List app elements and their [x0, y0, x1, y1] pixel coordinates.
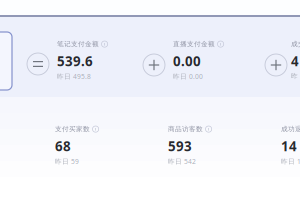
staticText: 昨日 1 [281, 157, 300, 166]
staticText: 68 [55, 137, 71, 155]
staticText: 593 [168, 137, 192, 155]
staticText: 14 [281, 137, 297, 155]
staticText: 昨日 0.00 [173, 72, 203, 81]
staticText: 4 [291, 52, 299, 70]
staticText: 成功退款 [281, 125, 300, 133]
button[interactable]: Add [265, 54, 287, 76]
staticText: 成交 [291, 40, 300, 48]
staticText: 笔记支付金额 [57, 40, 99, 48]
staticText: 商品访客数 [168, 125, 203, 133]
button[interactable]: Add [143, 54, 165, 76]
staticText: 539.6 [57, 52, 93, 70]
staticText: 昨 [291, 72, 298, 80]
staticText: 昨日 59 [55, 157, 79, 166]
button[interactable]: Equals [27, 53, 49, 75]
staticText: 昨日 542 [168, 157, 196, 166]
staticText: 昨日 495.8 [57, 72, 91, 81]
staticText: 支付买家数 [55, 125, 90, 133]
staticText: 直播支付金额 [173, 40, 215, 48]
staticText: 0.00 [173, 52, 201, 70]
